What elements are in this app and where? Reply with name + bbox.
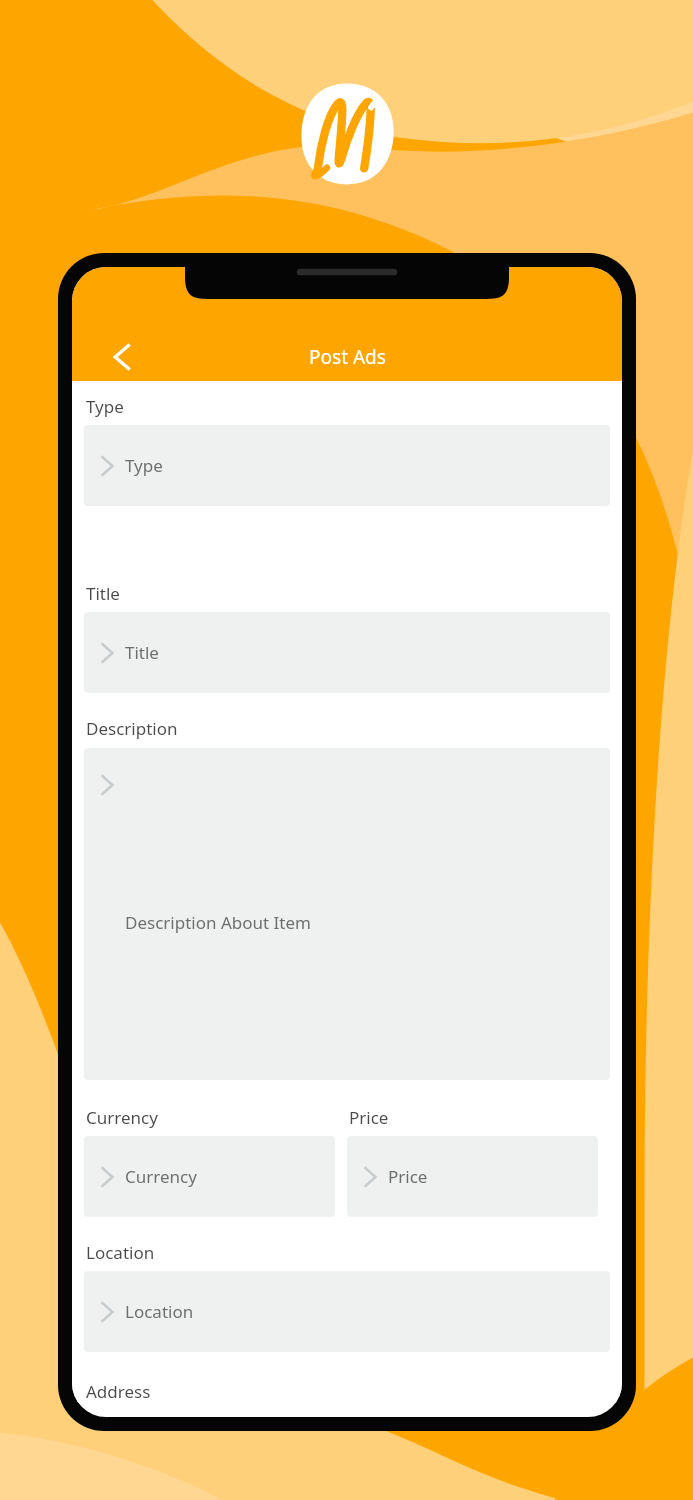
staticText: Description About Item — [125, 911, 311, 934]
staticText: Title — [86, 582, 120, 605]
staticText: Address — [86, 1380, 151, 1403]
staticText: Currency — [86, 1106, 158, 1129]
button[interactable]: Type — [84, 425, 610, 506]
button[interactable]: Title — [84, 612, 610, 693]
staticText: Price — [349, 1106, 389, 1129]
staticText: Type — [125, 454, 163, 477]
staticText: Post Ads — [309, 344, 386, 370]
button[interactable]: Description About Item — [84, 748, 610, 1080]
staticText: Currency — [125, 1165, 197, 1188]
button[interactable]: Back — [98, 333, 146, 381]
staticText: Type — [86, 395, 124, 418]
staticText: Location — [125, 1300, 194, 1323]
button[interactable]: Currency — [84, 1136, 335, 1217]
button[interactable]: Price — [347, 1136, 598, 1217]
staticText: Price — [388, 1165, 428, 1188]
staticText: Location — [86, 1241, 155, 1264]
staticText: Description — [86, 717, 178, 740]
button[interactable]: Location — [84, 1271, 610, 1352]
staticText: Title — [125, 641, 159, 664]
